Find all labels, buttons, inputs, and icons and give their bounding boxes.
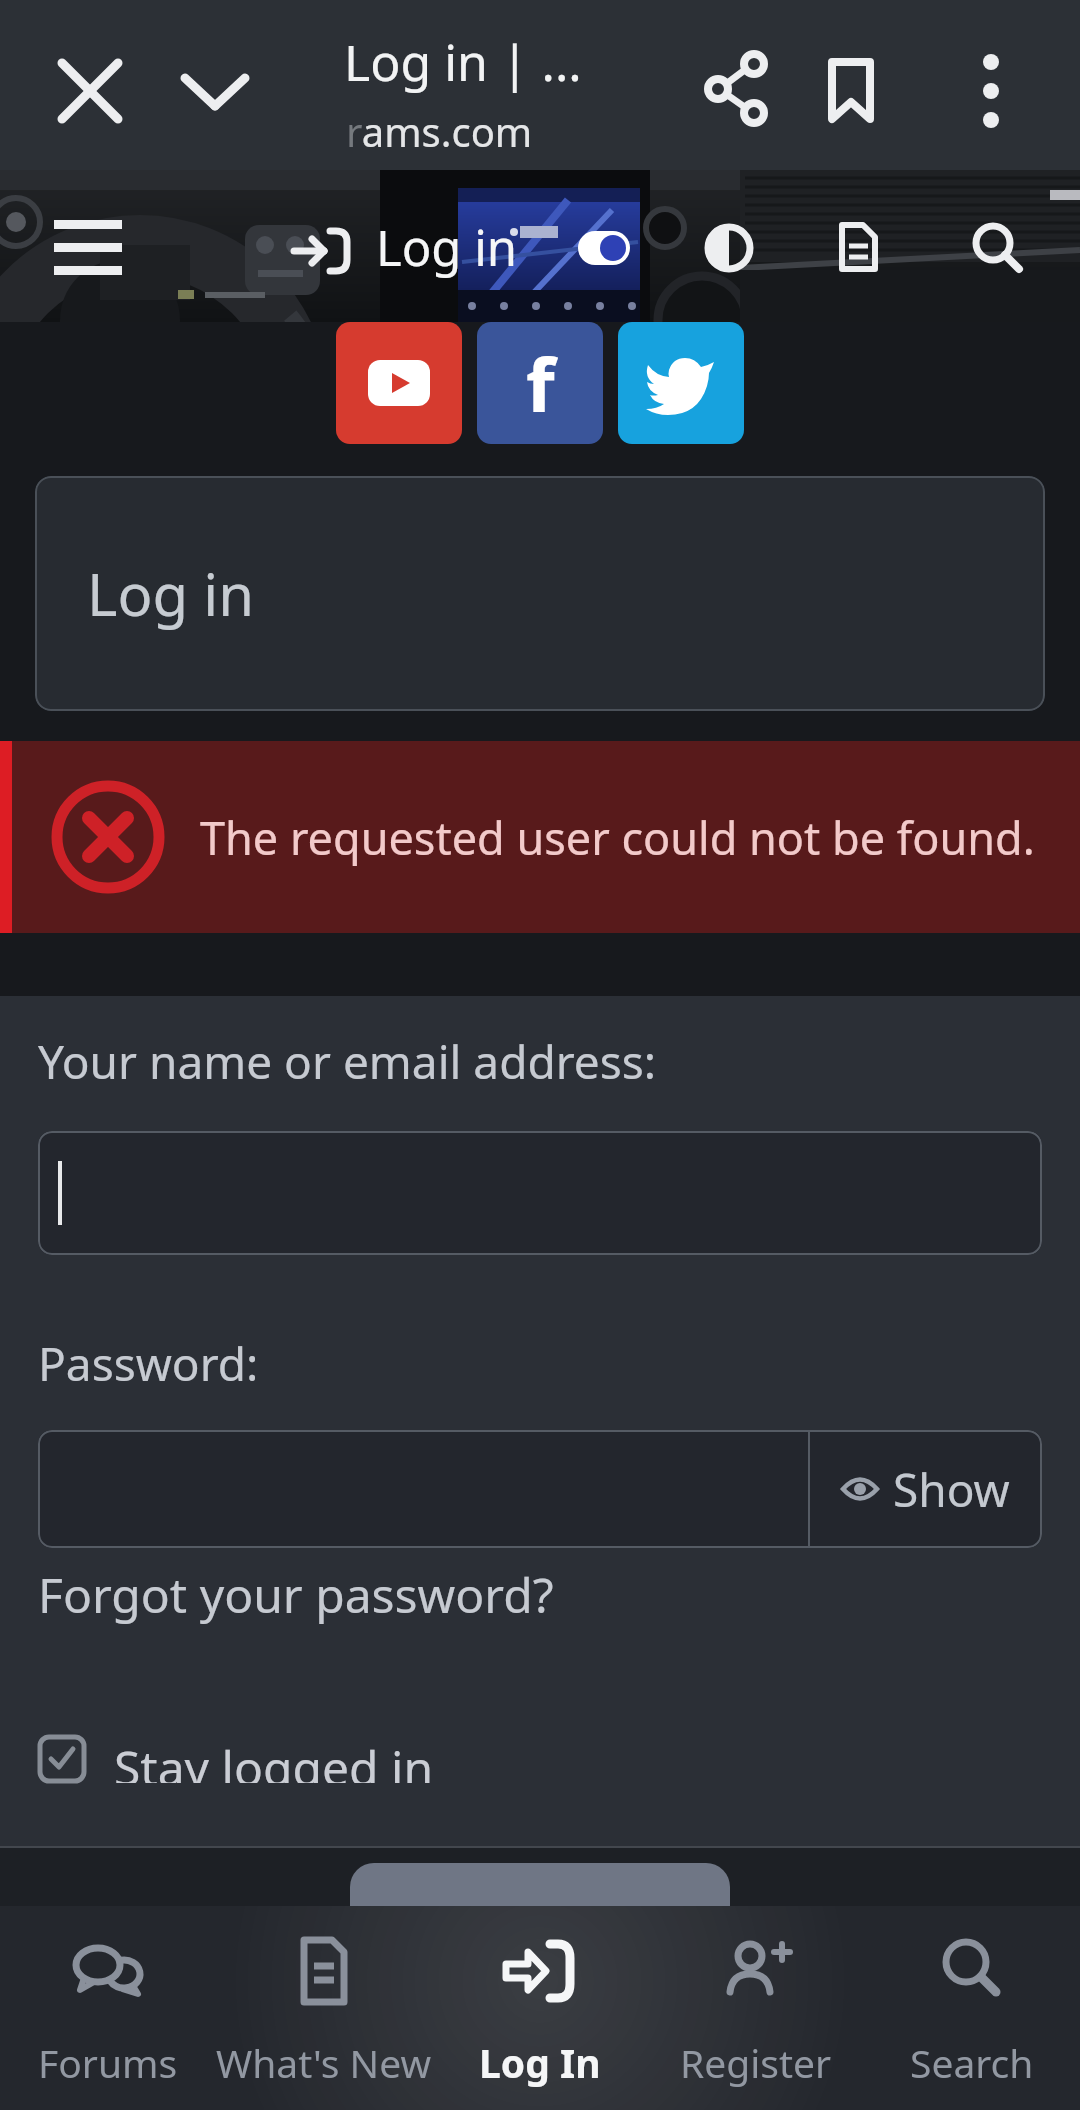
staticText: Log in	[87, 554, 255, 633]
button[interactable]	[183, 70, 247, 114]
staticText: rams.com	[346, 104, 533, 158]
staticText: Register	[680, 2036, 832, 2089]
staticText: Stay logged in	[114, 1735, 434, 1783]
button[interactable]	[972, 222, 1024, 274]
button[interactable]: Stay logged in	[38, 1735, 434, 1783]
staticText: f	[526, 333, 555, 434]
button[interactable]	[350, 1863, 730, 1906]
button[interactable]: Log In	[432, 1906, 648, 2110]
button[interactable]: Forgot your password?	[38, 1562, 554, 1627]
button[interactable]	[38, 1131, 1042, 1255]
button[interactable]	[824, 57, 878, 125]
button[interactable]: Search	[864, 1906, 1080, 2110]
staticText: Log in | ...	[344, 28, 582, 96]
staticText: What's New	[216, 2036, 432, 2089]
staticText: The requested user could not be found.	[200, 807, 1035, 868]
button[interactable]: Log in	[35, 476, 1045, 711]
button[interactable]	[704, 52, 774, 122]
button[interactable]	[336, 322, 462, 444]
button[interactable]: Forums	[0, 1906, 216, 2110]
button[interactable]	[294, 228, 350, 274]
button[interactable]	[578, 231, 630, 265]
button[interactable]: Show	[808, 1430, 1042, 1548]
button[interactable]: What's New	[216, 1906, 432, 2110]
staticText: Your name or email address:	[38, 1030, 657, 1093]
staticText: Forums	[38, 2036, 178, 2089]
button[interactable]	[618, 322, 744, 444]
button[interactable]: Register	[648, 1906, 864, 2110]
button[interactable]	[704, 223, 754, 273]
staticText: Search	[910, 2036, 1034, 2089]
staticText: Log In	[479, 2036, 601, 2089]
staticText: Log in	[376, 214, 518, 281]
button[interactable]	[60, 61, 120, 121]
button[interactable]	[961, 46, 1021, 136]
staticText: Forgot your password?	[38, 1562, 554, 1627]
button[interactable]: Show	[38, 1430, 1042, 1548]
button[interactable]: f	[477, 322, 603, 444]
staticText: Password:	[38, 1332, 259, 1395]
button[interactable]	[838, 222, 880, 272]
staticText: Show	[893, 1458, 1010, 1521]
button[interactable]	[54, 220, 122, 278]
